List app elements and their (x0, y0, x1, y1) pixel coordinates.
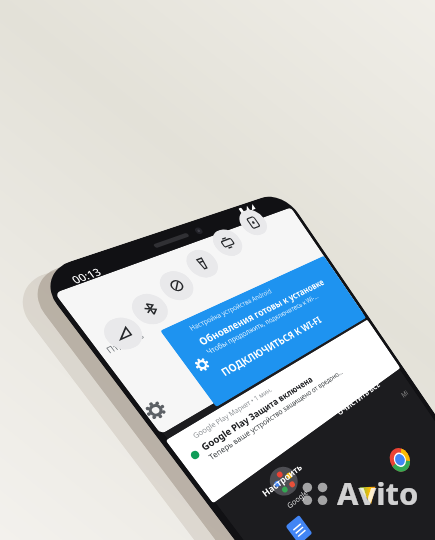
button[interactable]: Docs (282, 512, 315, 540)
staticText: Настроить (259, 460, 305, 500)
button[interactable]: Flashlight (180, 246, 224, 282)
staticText: Avito (337, 472, 419, 514)
button[interactable]: Auto rotate (207, 226, 248, 260)
staticText: Google (285, 487, 310, 511)
staticText: Google Play Защита включена (198, 373, 316, 454)
staticText: Google Play Маркет • 1 мин. (190, 384, 274, 441)
button[interactable]: Wi-Fi (96, 312, 149, 355)
staticText: Чтобы продолжить, подключитесь к Wi-… (204, 292, 321, 357)
button[interactable]: Do not disturb (153, 267, 200, 305)
button[interactable]: Настройка устройства Android (160, 256, 366, 407)
button[interactable]: Google folder (264, 461, 303, 501)
staticText: Mi (399, 387, 410, 399)
staticText: 00:13 (68, 264, 105, 286)
button[interactable]: Bluetooth (125, 289, 175, 329)
button[interactable]: Settings (133, 391, 176, 429)
button[interactable]: Play Store (354, 474, 385, 510)
button[interactable]: Google Play Маркет • 1 мин. (165, 319, 401, 503)
staticText: ПОДКЛЮЧИТЬСЯ К WI-FI (217, 313, 324, 379)
staticText: Настройка устройства Android (187, 287, 273, 333)
staticText: ОЧИСТИТЬ ВСЕ (335, 379, 383, 418)
staticText: Теперь ваше устройство защищено от вредо… (207, 367, 345, 463)
staticText: Пт, 2 янв (103, 329, 147, 356)
staticText: Обновления готовы к установке (196, 276, 327, 348)
button[interactable]: Screenshot (234, 207, 272, 239)
button[interactable]: Chrome (385, 443, 414, 476)
